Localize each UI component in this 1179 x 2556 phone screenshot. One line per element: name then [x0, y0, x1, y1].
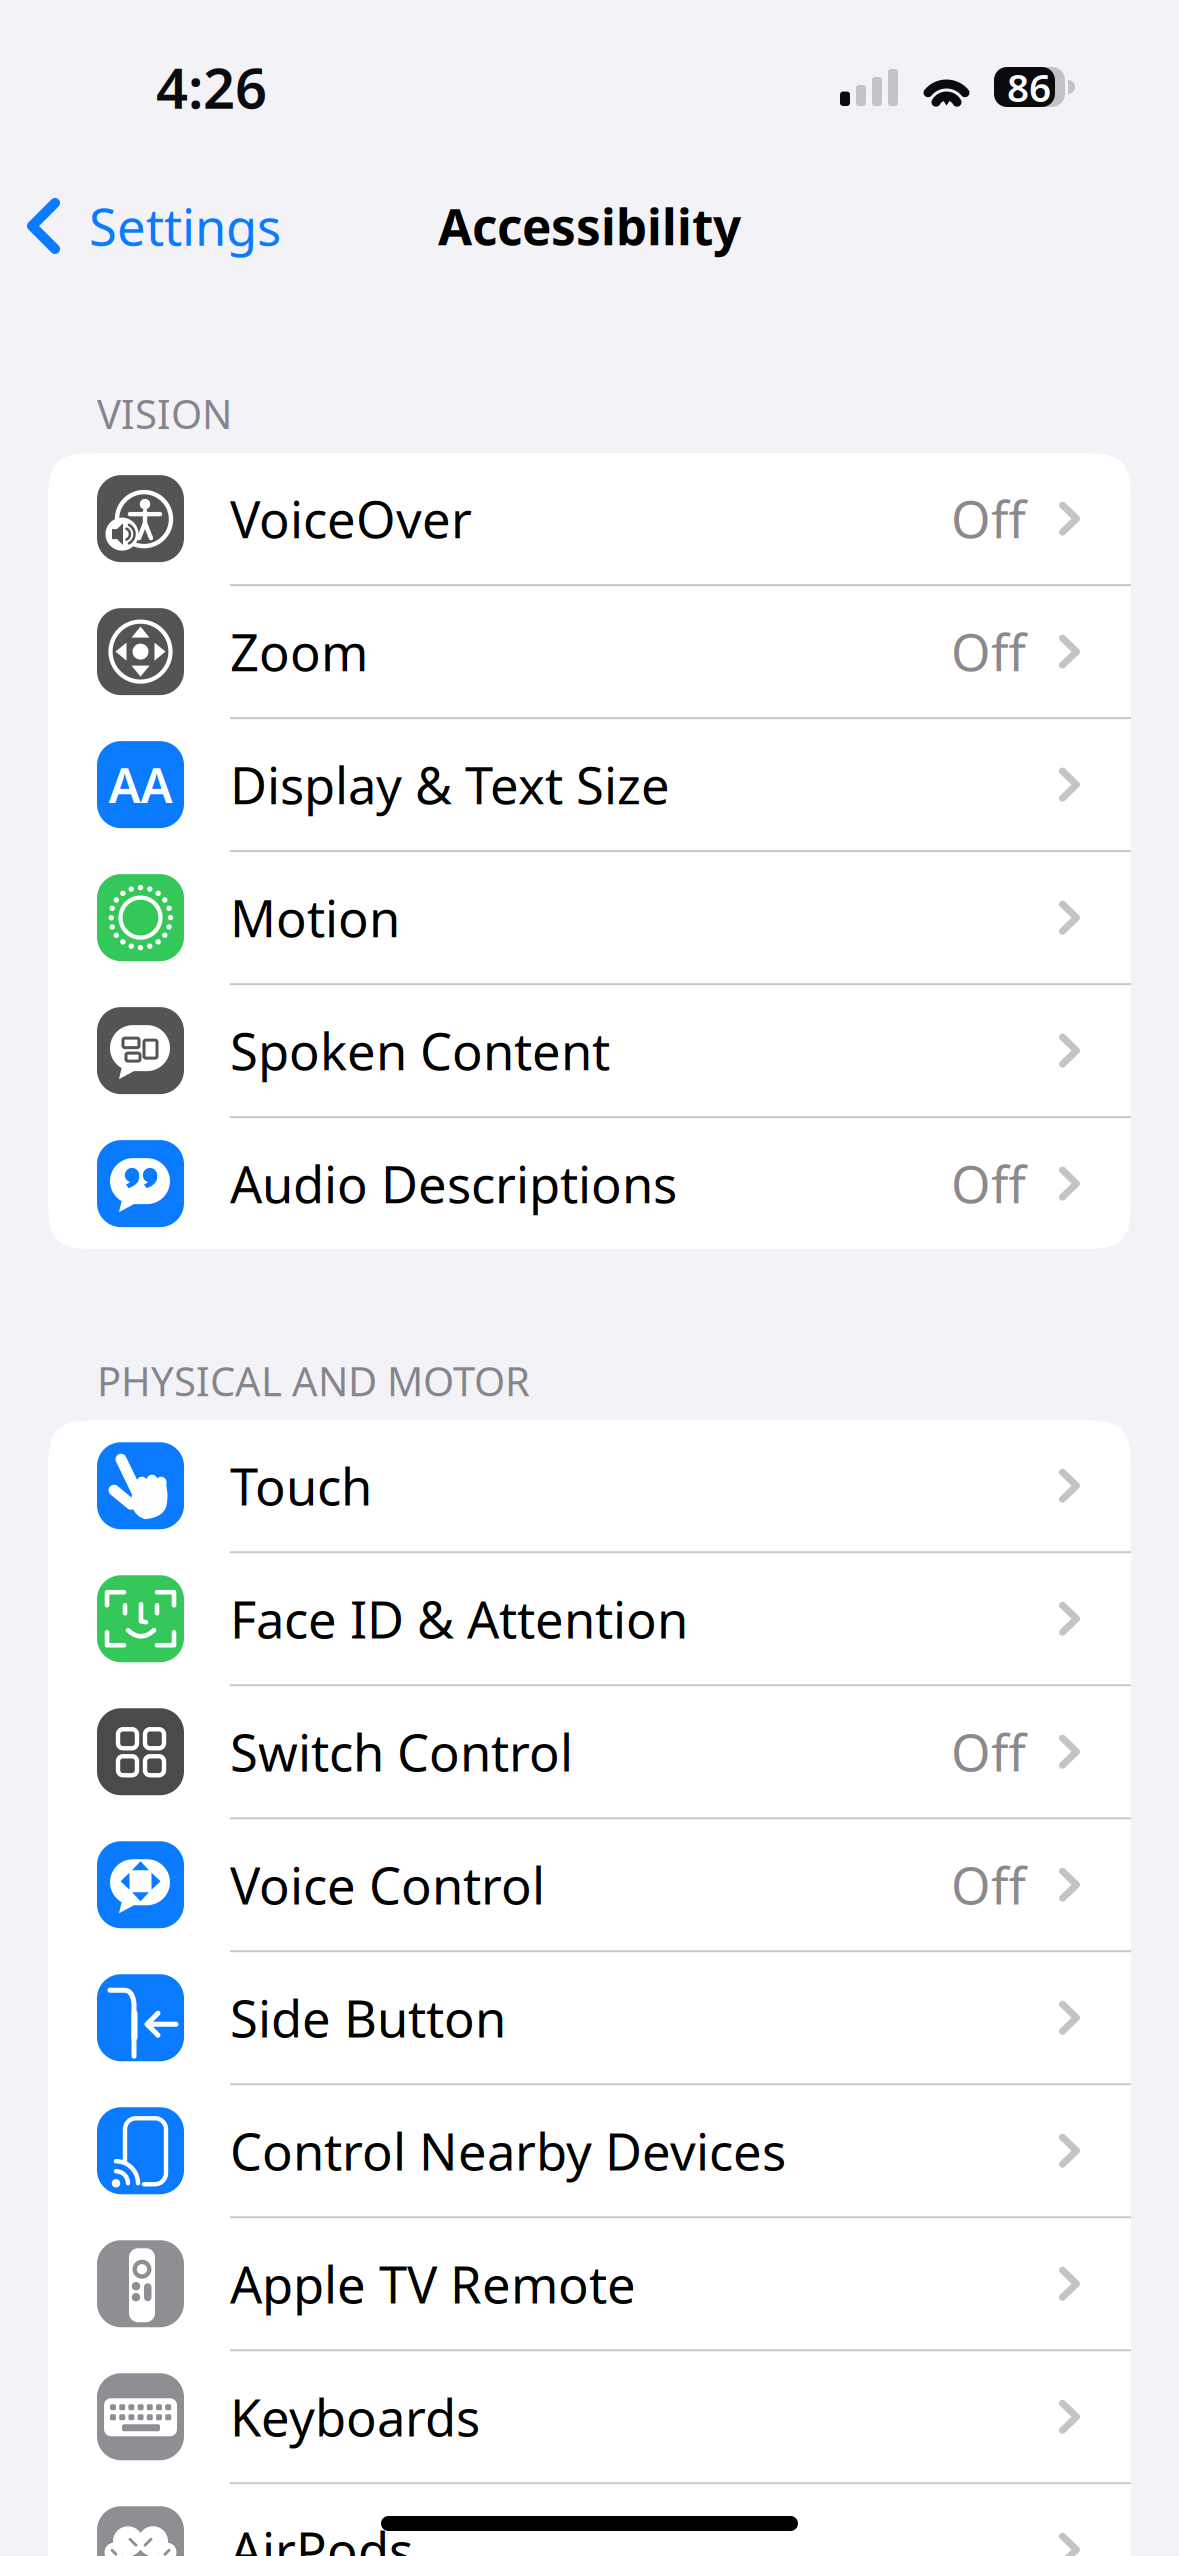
staticText: 4:26 [156, 50, 267, 124]
staticText: Off [951, 1851, 1026, 1918]
staticText: Audio Descriptions [230, 1150, 677, 1217]
button[interactable]: Face ID & Attention [48, 1553, 1131, 1684]
staticText: AirPods [230, 2516, 413, 2556]
button[interactable]: Voice Control [48, 1819, 1131, 1950]
button[interactable]: Zoom [48, 586, 1131, 717]
staticText: Voice Control [230, 1851, 545, 1918]
staticText: Side Button [230, 1984, 506, 2051]
staticText: Keyboards [230, 2383, 480, 2450]
button[interactable]: Touch [48, 1420, 1131, 1551]
staticText: Apple TV Remote [230, 2250, 636, 2317]
staticText: Control Nearby Devices [230, 2117, 786, 2184]
staticText: Touch [230, 1452, 372, 1519]
staticText: 86 [1007, 61, 1051, 113]
button[interactable]: AirPods [48, 2484, 1131, 2556]
staticText: VISION [97, 387, 232, 440]
staticText: VoiceOver [230, 485, 472, 552]
button[interactable]: Side Button [48, 1952, 1131, 2083]
staticText: Off [951, 1150, 1026, 1217]
staticText: Switch Control [230, 1718, 573, 1785]
staticText: Spoken Content [230, 1017, 610, 1084]
button[interactable]: Settings [0, 192, 281, 260]
button[interactable]: Switch Control [48, 1686, 1131, 1817]
staticText: Settings [89, 192, 281, 260]
button[interactable]: Motion [48, 852, 1131, 983]
staticText: Off [951, 1718, 1026, 1785]
staticText: Zoom [230, 618, 368, 685]
button[interactable]: Control Nearby Devices [48, 2085, 1131, 2216]
button[interactable]: VoiceOver [48, 453, 1131, 584]
staticText: Off [951, 618, 1026, 685]
button[interactable]: Audio Descriptions [48, 1118, 1131, 1249]
staticText: Display & Text Size [230, 751, 670, 818]
button[interactable]: Keyboards [48, 2351, 1131, 2482]
staticText: Motion [230, 884, 400, 951]
button[interactable]: Spoken Content [48, 985, 1131, 1116]
staticText: Face ID & Attention [230, 1585, 688, 1652]
staticText: PHYSICAL AND MOTOR [97, 1354, 530, 1407]
staticText: Accessibility [438, 193, 741, 259]
staticText: AA [108, 753, 172, 816]
button[interactable]: AA [48, 719, 1131, 850]
button[interactable]: Apple TV Remote [48, 2218, 1131, 2349]
staticText: Off [951, 485, 1026, 552]
